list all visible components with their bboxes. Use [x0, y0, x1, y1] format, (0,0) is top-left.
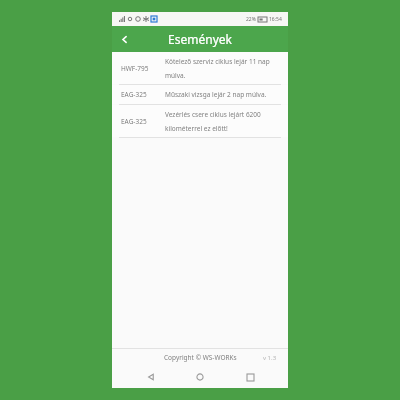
staticText: Copyright © WS-WORKs: [164, 353, 237, 362]
button[interactable]: HWF-795: [112, 52, 288, 85]
staticText: Események: [168, 31, 232, 47]
staticText: v 1.3: [263, 354, 277, 362]
button[interactable]: Back: [140, 366, 162, 388]
staticText: Műszaki vizsga lejár 2 nap múlva.: [165, 90, 267, 99]
staticText: EAG-325: [121, 117, 161, 126]
button[interactable]: Recents: [239, 366, 261, 388]
staticText: EAG-325: [121, 90, 161, 99]
staticText: 22%: [246, 16, 256, 23]
button[interactable]: Home: [189, 366, 211, 388]
staticText: Kötelező szerviz ciklus lejár 11 nap múl…: [165, 57, 280, 80]
button[interactable]: EAG-325: [112, 85, 288, 105]
button[interactable]: EAG-325: [112, 105, 288, 138]
staticText: Vezérlés csere ciklus lejárt 6200 kilomé…: [165, 110, 280, 133]
staticText: 16:54: [269, 16, 282, 23]
staticText: HWF-795: [121, 64, 161, 73]
button[interactable]: Back: [112, 27, 136, 51]
